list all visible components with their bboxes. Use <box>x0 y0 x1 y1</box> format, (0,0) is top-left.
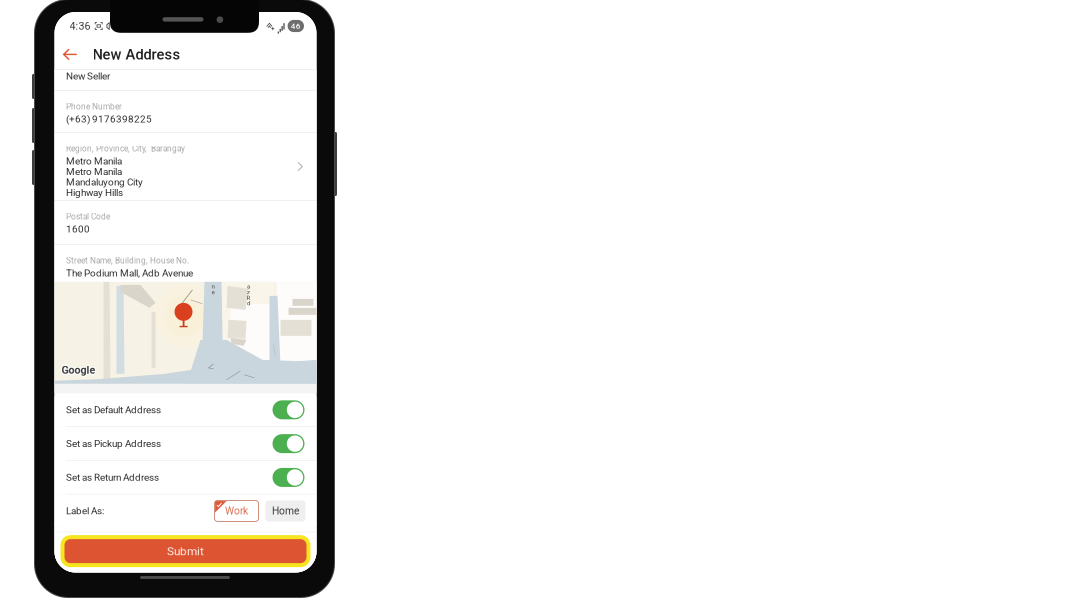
button[interactable]: Back <box>54 42 92 67</box>
staticText: 46 <box>291 21 301 31</box>
staticText: New Seller <box>66 70 110 82</box>
staticText: Highway Hills <box>66 187 123 198</box>
staticText: Metro Manila <box>66 166 122 177</box>
staticText: 4:36 <box>69 20 90 32</box>
staticText: d <box>247 300 250 307</box>
staticText: Google <box>63 364 97 376</box>
staticText: Region, Province, City, Barangay <box>66 144 185 154</box>
staticText: The Podium Mall, Adb Avenue <box>66 267 193 279</box>
staticText: Google <box>62 365 96 377</box>
staticText: Google <box>61 364 95 376</box>
staticText: a <box>247 283 250 290</box>
staticText: Metro Manila <box>66 155 122 167</box>
button[interactable]: Work <box>214 500 258 521</box>
button[interactable]: Set as Return Address <box>54 461 316 494</box>
staticText: Google <box>61 365 95 377</box>
staticText: New Address <box>92 46 180 63</box>
staticText: Set as Return Address <box>66 472 159 483</box>
button[interactable]: Home <box>265 500 305 521</box>
staticText: Mandaluyong City <box>66 176 143 188</box>
staticText: Label As: <box>66 505 104 517</box>
staticText: Set as Default Address <box>66 404 161 416</box>
staticText: n <box>211 283 214 290</box>
staticText: Google <box>61 363 95 375</box>
staticText: Google <box>61 365 95 377</box>
staticText: Home <box>272 505 299 517</box>
staticText: R <box>246 294 250 301</box>
staticText: Google <box>60 364 94 376</box>
staticText: Street Name, Building, House No. <box>66 256 189 266</box>
staticText: Phone Number <box>66 102 122 112</box>
staticText: Work <box>225 505 248 517</box>
staticText: Google <box>61 363 95 376</box>
staticText: e <box>211 288 214 296</box>
staticText: (+63) 9176398225 <box>66 113 152 125</box>
staticText: z <box>247 288 250 296</box>
staticText: Submit <box>167 544 204 558</box>
staticText: Set as Pickup Address <box>66 438 161 449</box>
staticText: Google <box>62 363 96 376</box>
staticText: 1600 <box>66 223 90 235</box>
button[interactable]: Set as Pickup Address <box>54 427 316 460</box>
button[interactable]: Set as Default Address <box>54 393 316 426</box>
staticText: Postal Code <box>66 212 110 222</box>
